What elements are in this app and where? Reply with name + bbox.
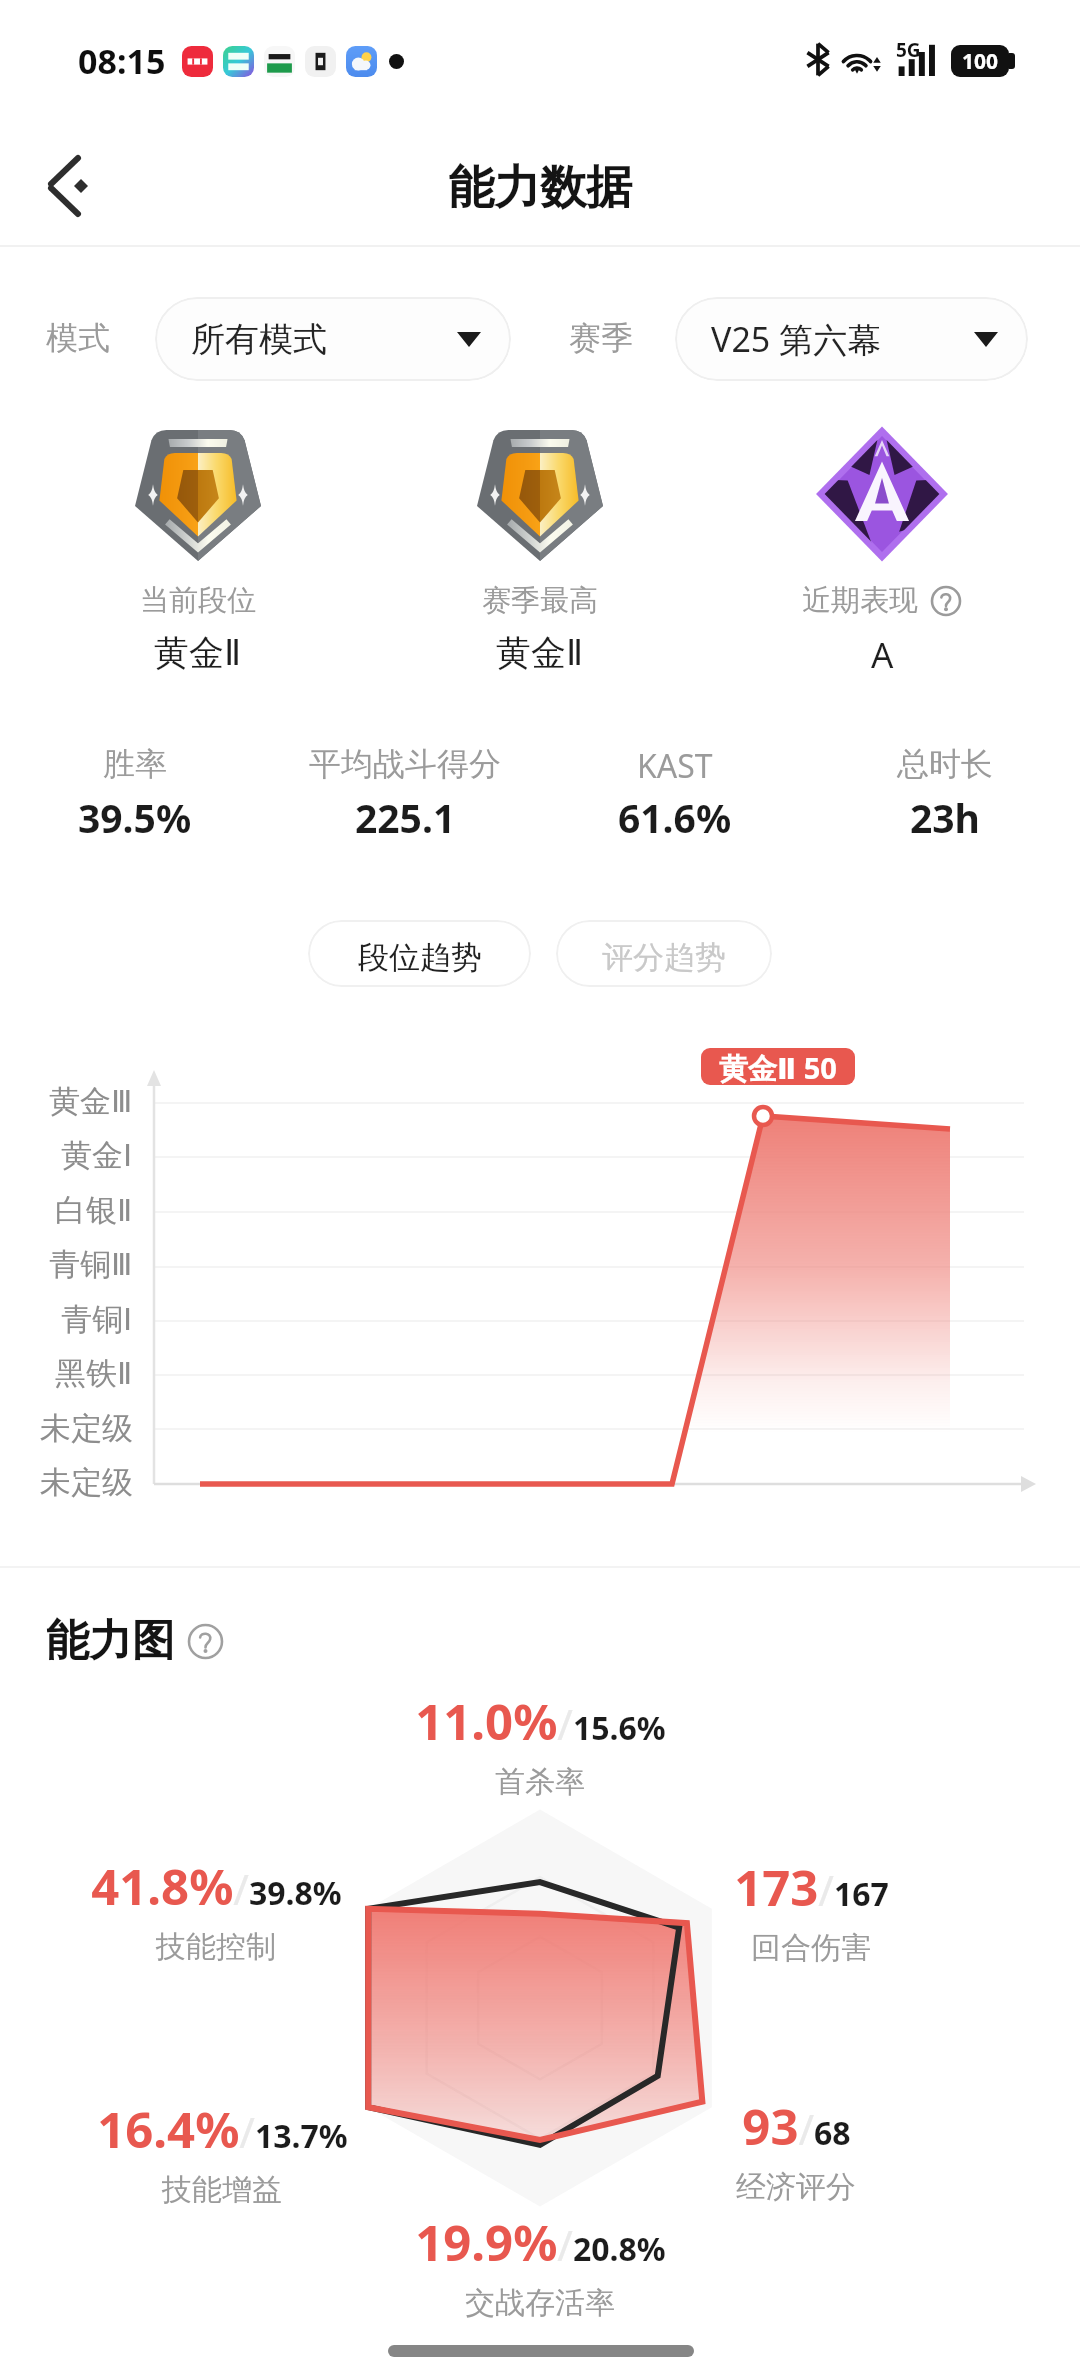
- staticText: 白银Ⅱ: [55, 1191, 133, 1230]
- staticText: 首杀率: [495, 1763, 585, 1801]
- staticText: 5G: [896, 37, 921, 63]
- staticText: 61.6%: [618, 791, 732, 844]
- staticText: 青铜Ⅰ: [61, 1300, 133, 1339]
- staticText: 11.0%/15.6%: [415, 1688, 666, 1755]
- staticText: 所有模式: [191, 318, 327, 361]
- button[interactable]: Back: [30, 134, 120, 224]
- staticText: 能力数据: [448, 159, 632, 217]
- staticText: 93/68: [742, 2093, 851, 2160]
- staticText: 经济评分: [736, 2168, 856, 2206]
- staticText: 08:15: [78, 38, 166, 84]
- staticText: 225.1: [355, 791, 456, 844]
- staticText: 段位趋势: [358, 938, 482, 977]
- staticText: 黄金Ⅰ: [61, 1136, 133, 1175]
- staticText: 平均战斗得分: [309, 744, 501, 784]
- button[interactable]: About recent performance: [930, 585, 962, 617]
- staticText: 能力图: [46, 1614, 175, 1668]
- staticText: V25 第六幕: [711, 316, 882, 362]
- staticText: 技能控制: [156, 1928, 276, 1966]
- staticText: 近期表现: [802, 582, 918, 619]
- staticText: 未定级: [40, 1409, 133, 1448]
- staticText: 胜率: [103, 744, 167, 784]
- staticText: 16.4%/13.7%: [97, 2096, 348, 2163]
- staticText: 技能增益: [162, 2171, 282, 2209]
- staticText: 19.9%/20.8%: [415, 2209, 666, 2276]
- button[interactable]: 所有模式: [155, 297, 511, 381]
- button[interactable]: V25 第六幕: [675, 297, 1028, 381]
- staticText: 173/167: [734, 1854, 889, 1921]
- staticText: 23h: [910, 791, 980, 844]
- button[interactable]: About ability chart: [187, 1623, 224, 1660]
- staticText: 回合伤害: [751, 1929, 871, 1967]
- staticText: 100: [962, 47, 999, 76]
- button[interactable]: 段位趋势: [308, 920, 531, 987]
- staticText: 黄金Ⅱ 50: [719, 1048, 837, 1085]
- staticText: 黑铁Ⅱ: [55, 1354, 133, 1393]
- staticText: 赛季最高: [482, 582, 598, 619]
- staticText: 模式: [46, 318, 110, 358]
- staticText: KAST: [637, 744, 713, 788]
- staticText: 交战存活率: [465, 2284, 615, 2322]
- staticText: 青铜Ⅲ: [49, 1245, 133, 1284]
- staticText: 黄金Ⅱ: [154, 631, 242, 675]
- staticText: 黄金Ⅱ: [496, 631, 584, 675]
- staticText: A: [871, 631, 894, 679]
- staticText: 当前段位: [140, 582, 256, 619]
- button[interactable]: 评分趋势: [556, 920, 772, 987]
- staticText: 39.5%: [78, 791, 192, 844]
- staticText: 总时长: [897, 744, 993, 784]
- staticText: 评分趋势: [602, 938, 726, 977]
- staticText: 41.8%/39.8%: [91, 1853, 342, 1920]
- staticText: 未定级: [40, 1463, 133, 1502]
- staticText: 赛季: [569, 318, 633, 358]
- staticText: 黄金Ⅲ: [49, 1082, 133, 1121]
